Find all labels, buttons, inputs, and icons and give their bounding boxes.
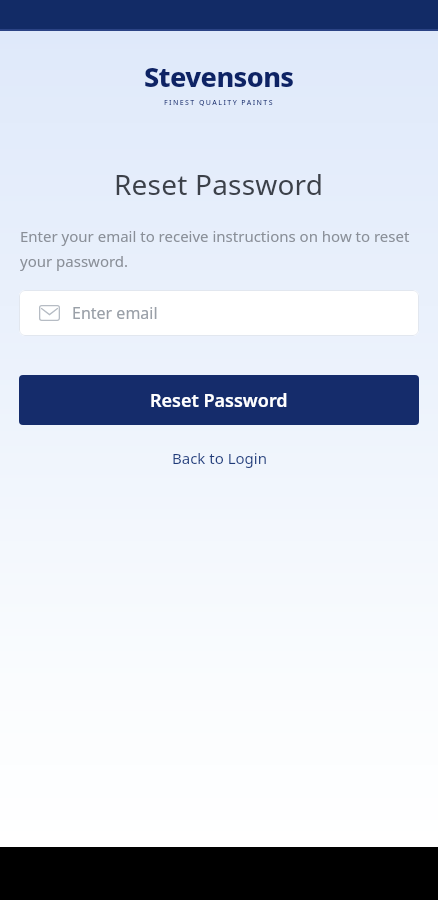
staticText: Enter email (72, 302, 158, 324)
staticText: FINEST QUALITY PAINTS (164, 98, 274, 108)
staticText: Stevensons (144, 58, 294, 95)
staticText: Reset Password (150, 388, 288, 413)
other: Email (39, 305, 60, 321)
staticText: Enter your email to receive instructions… (20, 226, 418, 271)
button[interactable]: Reset Password (19, 375, 419, 425)
button[interactable]: Email (19, 290, 419, 336)
button[interactable]: Back to Login (0, 442, 438, 474)
staticText: Back to Login (172, 448, 267, 468)
staticText: Reset Password (114, 165, 324, 203)
